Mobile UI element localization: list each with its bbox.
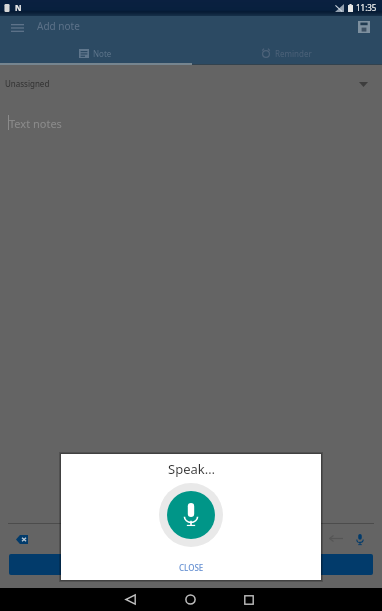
staticText: 11:35 bbox=[356, 2, 377, 13]
staticText: Unassigned bbox=[5, 78, 50, 89]
button[interactable]: Text notes bbox=[0, 101, 382, 501]
button[interactable]: Save note bbox=[351, 14, 377, 40]
staticText: CLOSE bbox=[179, 562, 204, 573]
staticText: Reminder bbox=[275, 48, 312, 59]
staticText: Text notes bbox=[9, 116, 62, 131]
staticText: Note bbox=[93, 48, 112, 59]
button[interactable]: Back bbox=[114, 588, 146, 611]
button[interactable]: Start voice input bbox=[159, 483, 223, 547]
button[interactable]: Home bbox=[174, 588, 206, 611]
staticText: Add note bbox=[37, 19, 80, 33]
staticText: Speak… bbox=[168, 460, 215, 478]
button[interactable]: Recent apps bbox=[233, 588, 265, 611]
button[interactable]: CLOSE bbox=[165, 559, 218, 576]
button[interactable]: Unassigned bbox=[0, 65, 382, 97]
button[interactable]: Open navigation menu bbox=[4, 14, 31, 41]
button[interactable]: Reminder bbox=[191, 42, 382, 64]
button[interactable]: Note bbox=[0, 42, 191, 64]
staticText: N bbox=[15, 2, 22, 13]
